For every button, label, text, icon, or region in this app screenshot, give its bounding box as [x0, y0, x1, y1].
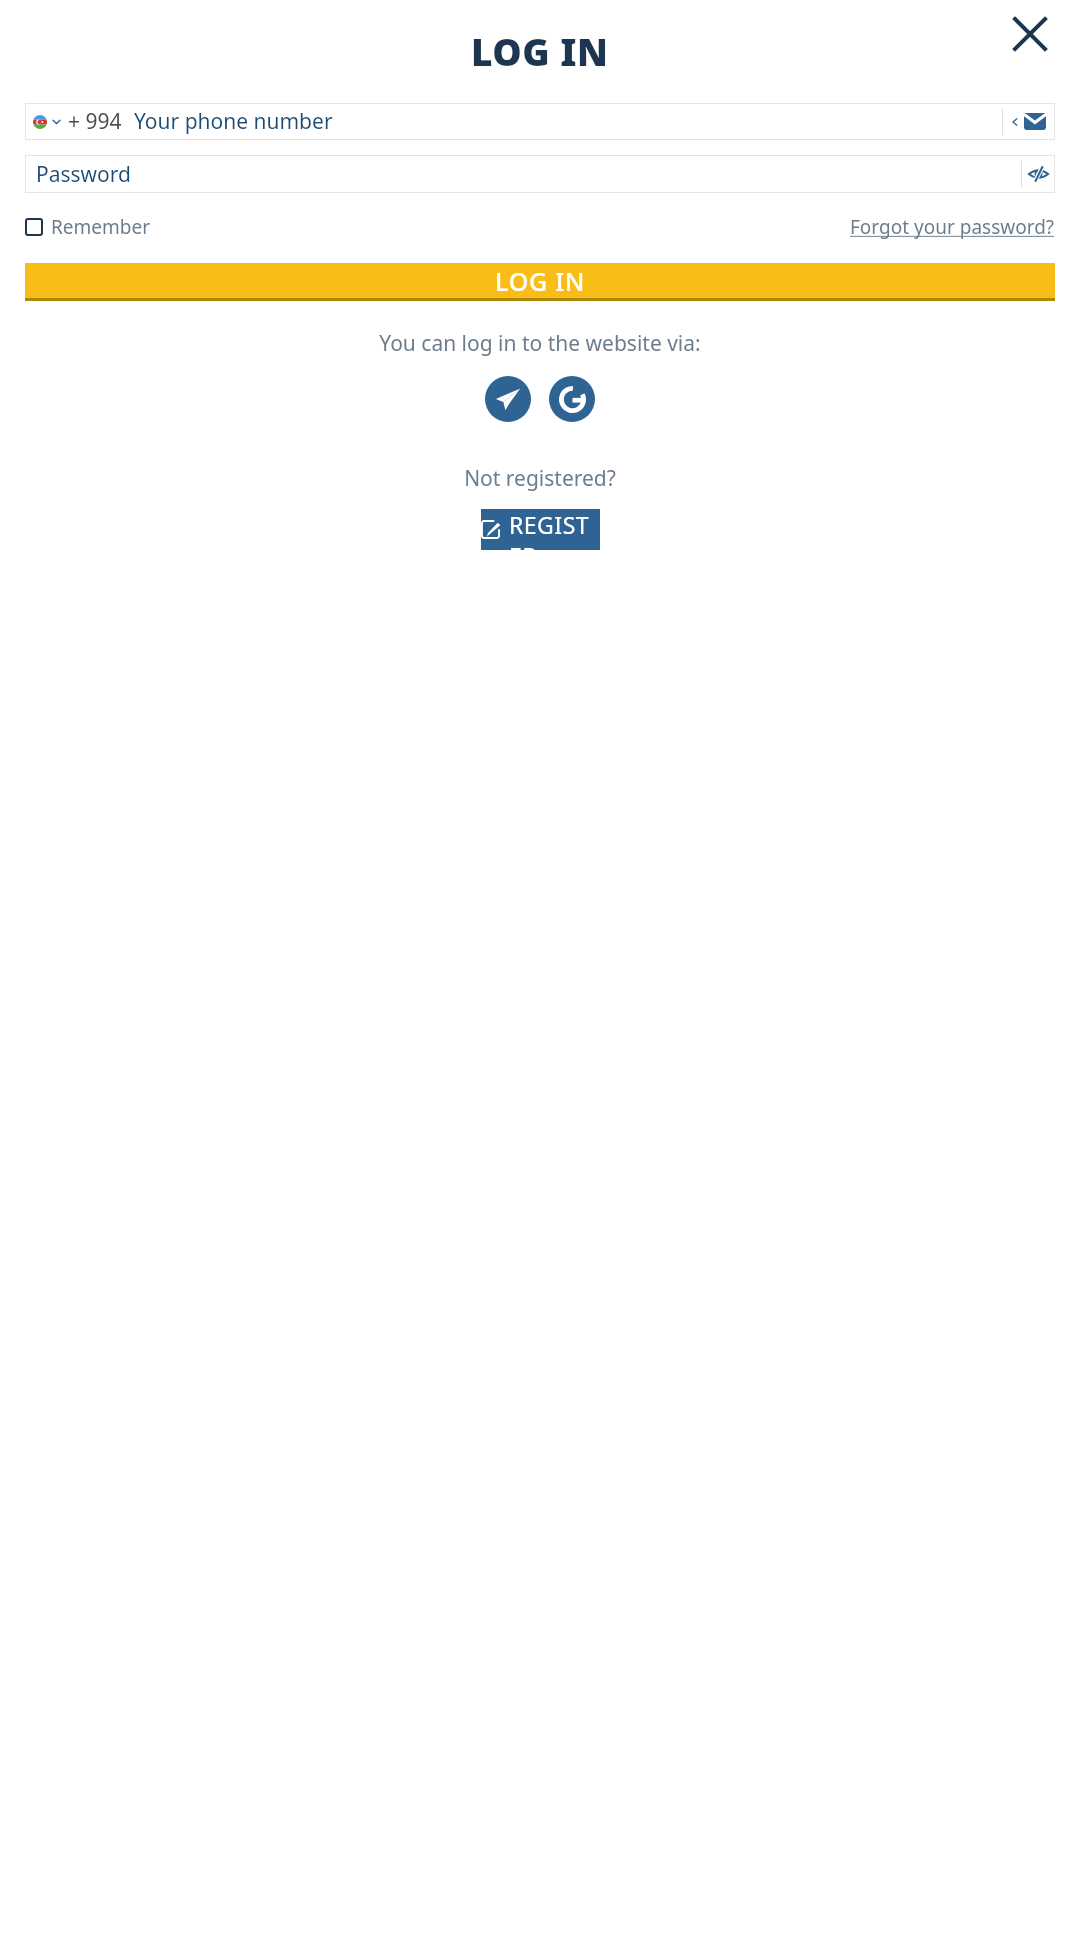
button[interactable]: + 994	[25, 103, 1055, 140]
staticText: Your phone number	[134, 107, 1002, 136]
button[interactable]: Forgot your password?	[850, 214, 1055, 240]
button[interactable]: Log in with Google	[549, 376, 595, 422]
button[interactable]: Show password	[1022, 155, 1055, 193]
staticText: LOG IN	[471, 26, 609, 76]
button[interactable]: Log in with email	[1003, 103, 1055, 140]
button[interactable]: Remember	[25, 214, 151, 240]
staticText: Password	[36, 160, 1021, 189]
staticText: You can log in to the website via:	[0, 329, 1080, 358]
button[interactable]: Log in with Telegram	[485, 376, 531, 422]
button[interactable]: Close	[1002, 6, 1058, 62]
staticText: LOG IN	[495, 264, 586, 298]
staticText: Not registered?	[0, 464, 1080, 493]
staticText: + 994	[68, 107, 122, 136]
button[interactable]: REGISTER	[481, 509, 600, 550]
staticText: REGISTER	[509, 509, 600, 550]
button[interactable]: LOG IN	[25, 263, 1055, 301]
button[interactable]: Password	[25, 155, 1055, 193]
staticText: Remember	[51, 214, 151, 240]
